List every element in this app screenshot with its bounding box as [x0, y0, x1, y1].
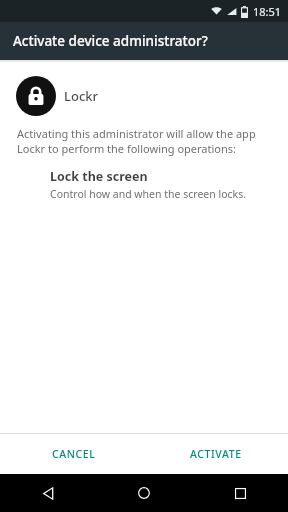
button[interactable]: ACTIVATE [178, 440, 254, 468]
button[interactable]: Home [96, 474, 192, 512]
staticText: Lock the screen [50, 168, 148, 185]
button[interactable]: CANCEL [40, 440, 108, 468]
staticText: CANCEL [52, 447, 96, 461]
staticText: Control how and when the screen locks. [50, 187, 246, 201]
staticText: Activate device administrator? [13, 32, 208, 50]
button[interactable]: Back [0, 474, 96, 512]
staticText: Lockr [64, 87, 99, 105]
staticText: ACTIVATE [190, 447, 242, 461]
button[interactable]: Recent apps [192, 474, 288, 512]
staticText: 18:51 [253, 4, 282, 19]
staticText: Activating this administrator will allow… [17, 126, 256, 156]
